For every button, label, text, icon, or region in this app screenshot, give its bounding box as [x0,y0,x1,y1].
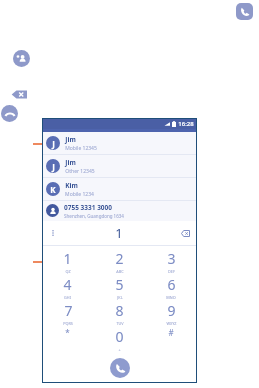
button[interactable]: More options [42,221,64,245]
button[interactable]: Call [110,358,130,378]
button[interactable]: Backspace [173,221,197,245]
button[interactable]: 6 [145,275,197,300]
staticText: Jim [65,158,76,167]
staticText: GHI [64,295,71,300]
button[interactable]: End call [1,105,18,122]
staticText: PQRS [63,321,73,326]
staticText: 16:28 [178,120,194,128]
staticText: DEF [168,269,175,274]
button[interactable]: 3 [145,249,197,274]
staticText: J [52,161,55,172]
staticText: 9 [167,301,176,320]
staticText: Jim [65,135,76,144]
staticText: Other 12345 [65,168,95,175]
staticText: 6 [167,275,176,294]
staticText: Mobile 12345 [65,145,97,152]
staticText: ABC [116,269,124,274]
staticText: + [118,347,121,352]
button[interactable]: 4 [42,275,93,300]
button[interactable]: 5 [93,275,145,300]
staticText: J [52,138,55,149]
staticText: TUV [116,321,124,326]
button[interactable]: Backspace [11,86,28,103]
staticText: K [50,184,56,195]
button[interactable]: # [145,327,197,338]
button[interactable]: Call [236,3,253,20]
button[interactable]: 2 [93,249,145,274]
button[interactable]: 7 [42,301,93,326]
staticText: # [168,327,174,338]
staticText: 0 [115,327,124,346]
staticText: WXYZ [166,321,177,326]
staticText: Shenzhen, Guangdong 1634 [64,213,124,219]
staticText: * [65,327,70,338]
staticText: MNO [166,295,176,300]
staticText: QZ [65,269,71,274]
button[interactable]: K [42,178,197,200]
button[interactable]: J [42,155,197,177]
staticText: 1 [63,249,72,268]
staticText: 5 [115,275,124,294]
button[interactable]: 0 [93,327,145,352]
staticText: 8 [115,301,124,320]
staticText: Mobile 1234 [65,191,94,198]
button[interactable]: Add contact [13,50,30,67]
staticText: 2 [115,249,124,268]
staticText: 4 [63,275,72,294]
button[interactable]: 1 [42,249,93,274]
button[interactable]: * [42,327,93,338]
button[interactable]: 8 [93,301,145,326]
staticText: 3 [167,249,176,268]
button[interactable]: 0755 3331 3000 [42,201,197,220]
staticText: JKL [117,295,123,300]
staticText: 0755 3331 3000 [64,203,112,212]
button[interactable]: J [42,132,197,154]
button[interactable]: 9 [145,301,197,326]
staticText: Kim [65,181,78,190]
staticText: 7 [64,301,73,320]
staticText: 1 [115,224,123,242]
